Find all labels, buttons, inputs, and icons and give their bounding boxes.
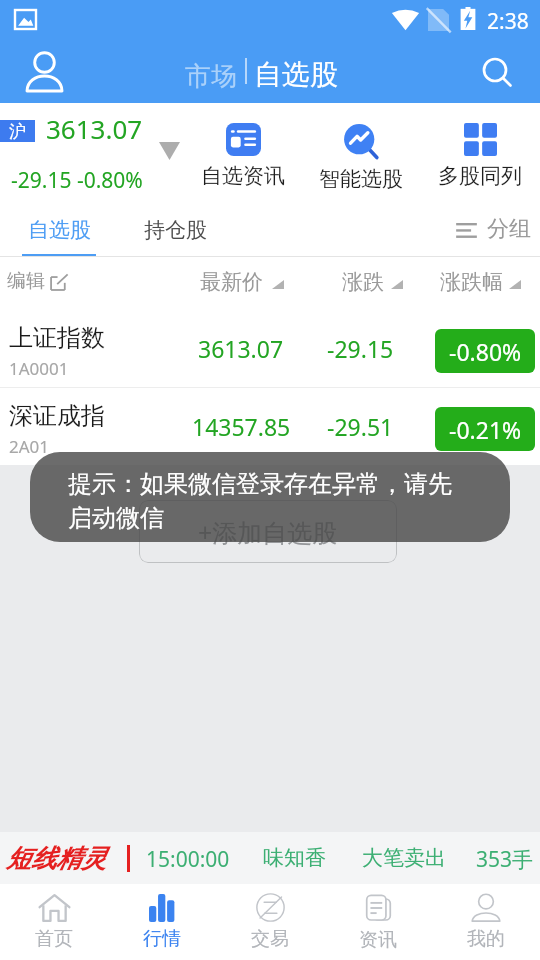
button[interactable]: 上证指数 (0, 310, 540, 387)
staticText: 3613.07 (46, 111, 143, 146)
staticText: 资讯 (359, 928, 397, 952)
button[interactable]: Search (468, 44, 528, 103)
staticText: 智能选股 (319, 166, 403, 192)
button[interactable]: 智能选股 (306, 123, 416, 192)
button[interactable]: 首页 (0, 884, 108, 960)
staticText: 涨跌幅 (440, 269, 503, 295)
button[interactable]: 行情 (108, 884, 216, 960)
button[interactable]: 自选股 (254, 57, 338, 92)
staticText: 交易 (251, 927, 289, 951)
button[interactable]: Profile (14, 44, 72, 103)
staticText: 自选资讯 (201, 163, 285, 189)
staticText: 自选股 (28, 217, 91, 243)
button[interactable]: 自选资讯 (188, 123, 298, 189)
staticText: -29.15 (327, 333, 394, 364)
button[interactable]: 我的 (432, 884, 540, 960)
staticText: 14357.85 (192, 411, 291, 442)
staticText: 味知香 (263, 845, 326, 871)
button[interactable]: 分组 (455, 215, 531, 243)
staticText: -29.51 (327, 411, 394, 442)
button[interactable]: 资讯 (324, 884, 432, 960)
staticText: +添加自选股 (198, 515, 338, 549)
button[interactable]: 短线精灵 (0, 832, 540, 884)
staticText: 短线精灵 (6, 843, 106, 874)
staticText: 深证成指 (9, 401, 105, 431)
button[interactable]: 编辑 (7, 269, 68, 293)
staticText: 分组 (487, 215, 531, 243)
staticText: 15:00:00 (146, 845, 230, 874)
staticText: 上证指数 (9, 323, 105, 353)
staticText: 行情 (143, 927, 181, 951)
button[interactable]: 市场 (185, 60, 237, 93)
staticText: 2:38 (487, 7, 529, 36)
staticText: 大笔卖出 (362, 845, 446, 871)
staticText: 多股同列 (438, 163, 522, 189)
button[interactable]: 自选股 (5, 203, 113, 257)
staticText: 3613.07 (198, 333, 284, 364)
button[interactable]: 涨跌幅 (432, 265, 521, 299)
button[interactable]: 提示：如果微信登录存在异常，请先 启动微信 (30, 452, 510, 542)
staticText: -0.80% (449, 336, 522, 367)
button[interactable]: 涨跌 (334, 265, 403, 299)
staticText: -0.21% (449, 414, 522, 445)
staticText: -29.15 -0.80% (11, 166, 143, 195)
staticText: 涨跌 (342, 269, 384, 295)
button[interactable]: 持仓股 (144, 217, 207, 243)
button[interactable]: 最新价 (192, 265, 284, 299)
staticText: 1A0001 (9, 357, 69, 380)
staticText: 编辑 (7, 269, 45, 293)
staticText: 2A01 (9, 435, 50, 458)
staticText: 353手 (476, 845, 534, 874)
staticText: 我的 (467, 927, 505, 951)
staticText: 沪 (9, 121, 26, 142)
staticText: 最新价 (200, 269, 263, 295)
button[interactable]: +添加自选股 (139, 500, 397, 563)
staticText: 提示：如果微信登录存在异常，请先 启动微信 (68, 469, 452, 534)
button[interactable]: 多股同列 (425, 123, 535, 189)
button[interactable]: 深证成指 (0, 388, 540, 465)
staticText: 首页 (35, 927, 73, 951)
button[interactable]: 交易 (216, 884, 324, 960)
